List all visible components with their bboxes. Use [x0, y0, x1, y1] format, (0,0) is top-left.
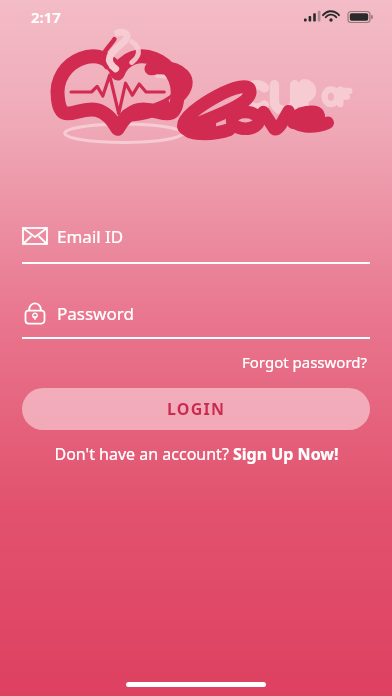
staticText: Email ID [57, 225, 124, 248]
button[interactable]: LOGIN [22, 388, 370, 430]
button[interactable]: Don't have an account? Sign Up Now! [54, 440, 339, 468]
staticText: Password [57, 302, 134, 325]
staticText: 2:17 [31, 7, 61, 27]
button[interactable]: Password [22, 292, 370, 334]
button[interactable]: Email ID [22, 215, 370, 257]
button[interactable]: Forgot password? [240, 349, 370, 375]
staticText: LOGIN [167, 398, 226, 420]
